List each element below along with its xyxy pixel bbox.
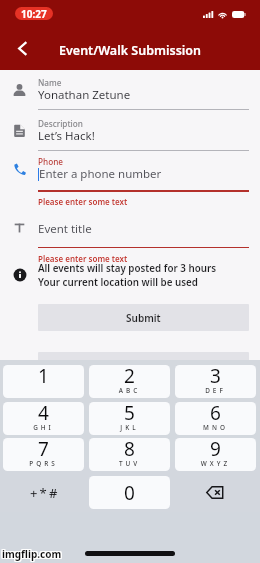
button[interactable]: 0: [89, 476, 170, 509]
staticText: TUV: [89, 459, 170, 468]
staticText: Your current location will be used: [38, 276, 198, 289]
button[interactable]: Back: [6, 32, 38, 64]
staticText: 6: [175, 402, 256, 426]
staticText: DEF: [175, 386, 256, 395]
button[interactable]: 1: [3, 365, 84, 398]
staticText: imgflip.com: [2, 547, 62, 561]
button[interactable]: 8: [89, 438, 170, 471]
staticText: Name: [38, 77, 62, 88]
staticText: 10:27: [21, 7, 47, 20]
staticText: 3: [175, 365, 256, 389]
staticText: Yonathan Zetune: [38, 87, 131, 103]
staticText: Please enter some text: [38, 196, 128, 207]
staticText: Phone: [38, 156, 63, 167]
button[interactable]: Secondary action: [38, 352, 249, 372]
staticText: imgflip.com: [1, 548, 61, 562]
staticText: Submit: [126, 311, 161, 325]
staticText: Enter a phone number: [39, 166, 162, 182]
staticText: ABC: [89, 386, 170, 395]
staticText: JKL: [89, 423, 170, 432]
button[interactable]: Delete: [175, 476, 256, 509]
staticText: imgflip.com: [2, 546, 62, 560]
button[interactable]: Submit: [38, 304, 249, 331]
button[interactable]: 2: [89, 365, 170, 398]
staticText: 4: [3, 402, 84, 426]
button[interactable]: 7: [3, 438, 84, 471]
staticText: PQRS: [3, 459, 84, 468]
staticText: Event title: [38, 221, 92, 237]
staticText: Let’s Hack!: [38, 128, 95, 144]
staticText: imgflip.com: [3, 546, 63, 560]
staticText: 1: [3, 365, 84, 389]
staticText: 7: [3, 438, 84, 462]
staticText: GHI: [3, 423, 84, 432]
staticText: imgflip.com: [2, 548, 62, 562]
staticText: imgflip.com: [1, 546, 61, 560]
staticText: Description: [38, 118, 83, 129]
staticText: 5: [89, 402, 170, 426]
button[interactable]: 4: [3, 402, 84, 435]
button[interactable]: 3: [175, 365, 256, 398]
staticText: 8: [89, 438, 170, 462]
staticText: imgflip.com: [1, 547, 61, 561]
staticText: imgflip.com: [3, 548, 63, 562]
button[interactable]: 6: [175, 402, 256, 435]
button[interactable]: + * #: [3, 476, 84, 509]
staticText: 9: [175, 438, 256, 462]
staticText: 0: [89, 480, 170, 506]
staticText: MNO: [175, 423, 256, 432]
button[interactable]: 9: [175, 438, 256, 471]
staticText: Please enter some text: [38, 253, 128, 264]
staticText: + * #: [30, 484, 58, 502]
staticText: WXYZ: [175, 459, 256, 468]
staticText: 2: [89, 365, 170, 389]
button[interactable]: 5: [89, 402, 170, 435]
staticText: imgflip.com: [3, 547, 63, 561]
staticText: All events will stay posted for 3 hours: [38, 262, 217, 275]
staticText: Event/Walk Submission: [59, 42, 202, 59]
